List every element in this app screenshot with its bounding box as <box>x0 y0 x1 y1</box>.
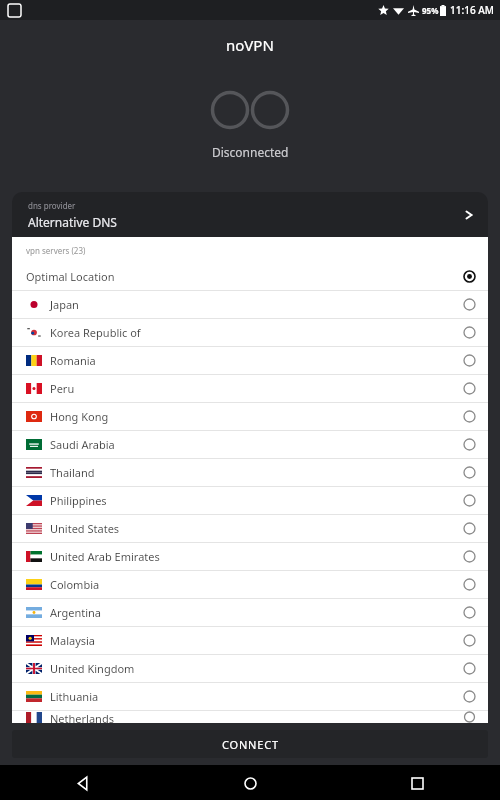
button[interactable]: Korea Republic of <box>12 319 488 346</box>
button[interactable]: CONNECT <box>12 730 488 758</box>
staticText: Thailand <box>50 465 95 480</box>
staticText: Optimal Location <box>26 269 115 284</box>
button[interactable]: United Kingdom <box>12 655 488 682</box>
button[interactable]: Optimal Location <box>12 263 488 290</box>
button[interactable]: Argentina <box>12 599 488 626</box>
staticText: Korea Republic of <box>50 325 141 340</box>
button[interactable]: Recents <box>402 768 432 798</box>
staticText: 11:16 AM <box>450 3 494 17</box>
staticText: noVPN <box>226 35 274 55</box>
button[interactable]: Lithuania <box>12 683 488 710</box>
button[interactable]: Back <box>68 768 98 798</box>
staticText: Colombia <box>50 577 100 592</box>
button[interactable]: Hong Kong <box>12 403 488 430</box>
staticText: Disconnected <box>212 144 289 160</box>
button[interactable]: Colombia <box>12 571 488 598</box>
button[interactable]: Netherlands <box>12 711 488 723</box>
button[interactable]: Philippines <box>12 487 488 514</box>
staticText: Japan <box>50 297 79 312</box>
staticText: Saudi Arabia <box>50 437 115 452</box>
staticText: Argentina <box>50 605 102 620</box>
staticText: Alternative DNS <box>28 214 117 230</box>
staticText: United Arab Emirates <box>50 549 160 564</box>
staticText: United States <box>50 521 120 536</box>
staticText: dns provider <box>28 200 76 211</box>
staticText: Malaysia <box>50 633 96 648</box>
button[interactable]: Romania <box>12 347 488 374</box>
button[interactable]: Thailand <box>12 459 488 486</box>
button[interactable]: Saudi Arabia <box>12 431 488 458</box>
staticText: CONNECT <box>222 737 279 752</box>
button[interactable]: United Arab Emirates <box>12 543 488 570</box>
button[interactable]: Home <box>235 768 265 798</box>
button[interactable]: Malaysia <box>12 627 488 654</box>
staticText: Hong Kong <box>50 409 109 424</box>
button[interactable]: Japan <box>12 291 488 318</box>
staticText: United Kingdom <box>50 661 135 676</box>
staticText: Philippines <box>50 493 107 508</box>
button[interactable]: dns provider <box>12 192 488 237</box>
staticText: Peru <box>50 381 75 396</box>
staticText: Netherlands <box>50 711 114 723</box>
button[interactable]: United States <box>12 515 488 542</box>
staticText: 95% <box>422 5 439 16</box>
staticText: Romania <box>50 353 96 368</box>
button[interactable]: Peru <box>12 375 488 402</box>
staticText: Lithuania <box>50 689 99 704</box>
staticText: vpn servers (23) <box>26 245 86 256</box>
